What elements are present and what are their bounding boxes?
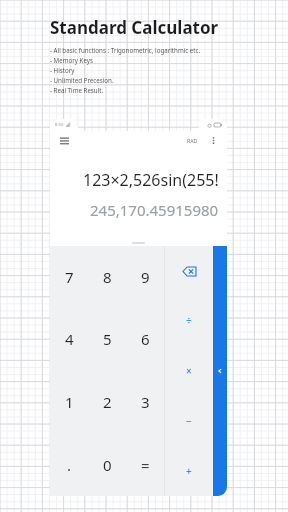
button[interactable]: RAD [184, 135, 201, 146]
button[interactable]: . [50, 433, 88, 496]
button[interactable]: More options [207, 134, 220, 147]
button[interactable]: 9 [126, 246, 164, 308]
staticText: 4 [65, 329, 74, 349]
staticText: − [186, 414, 192, 428]
button[interactable]: = [126, 433, 164, 496]
staticText: + [186, 464, 192, 478]
staticText: - All basic functions : Trigonometric, l… [50, 46, 201, 54]
button[interactable]: 1 [50, 370, 88, 433]
staticText: 245,170.45915980 [90, 200, 219, 220]
staticText: 0 [103, 455, 112, 475]
button[interactable]: 6 [126, 308, 164, 370]
button[interactable]: Expand panel [213, 246, 227, 496]
staticText: - Real Time Result. [50, 86, 104, 94]
staticText: ÷ [186, 314, 192, 328]
staticText: 7 [65, 267, 74, 287]
button[interactable]: Operator [165, 396, 213, 446]
button[interactable]: 0 [88, 433, 126, 496]
staticText: - Unlimited Precesion. [50, 76, 114, 84]
staticText: 123×2,526sin(255! [83, 169, 219, 191]
staticText: Standard Calculator [50, 16, 219, 39]
button[interactable]: 3 [126, 370, 164, 433]
button[interactable]: 2 [88, 370, 126, 433]
staticText: 6 [141, 329, 150, 349]
button[interactable]: 5 [88, 308, 126, 370]
staticText: 8:50 [55, 122, 64, 128]
staticText: × [186, 364, 192, 378]
button[interactable]: Menu [57, 134, 71, 148]
button[interactable]: 7 [50, 246, 88, 308]
staticText: . [67, 455, 72, 475]
staticText: - Memory Keys [50, 56, 93, 64]
button[interactable]: 4 [50, 308, 88, 370]
button[interactable]: Operator [165, 296, 213, 346]
button[interactable]: Operator [165, 246, 213, 296]
button[interactable]: Operator [165, 346, 213, 396]
staticText: - History [50, 66, 75, 74]
staticText: 3 [141, 392, 150, 412]
staticText: 8 [103, 267, 112, 287]
button[interactable]: 8 [88, 246, 126, 308]
staticText: 1 [65, 392, 74, 412]
staticText: 2 [103, 392, 112, 412]
staticText: = [141, 455, 150, 475]
button[interactable]: Operator [165, 446, 213, 496]
staticText: 5 [103, 329, 112, 349]
staticText: RAD [187, 137, 198, 144]
staticText: 9 [141, 267, 150, 287]
